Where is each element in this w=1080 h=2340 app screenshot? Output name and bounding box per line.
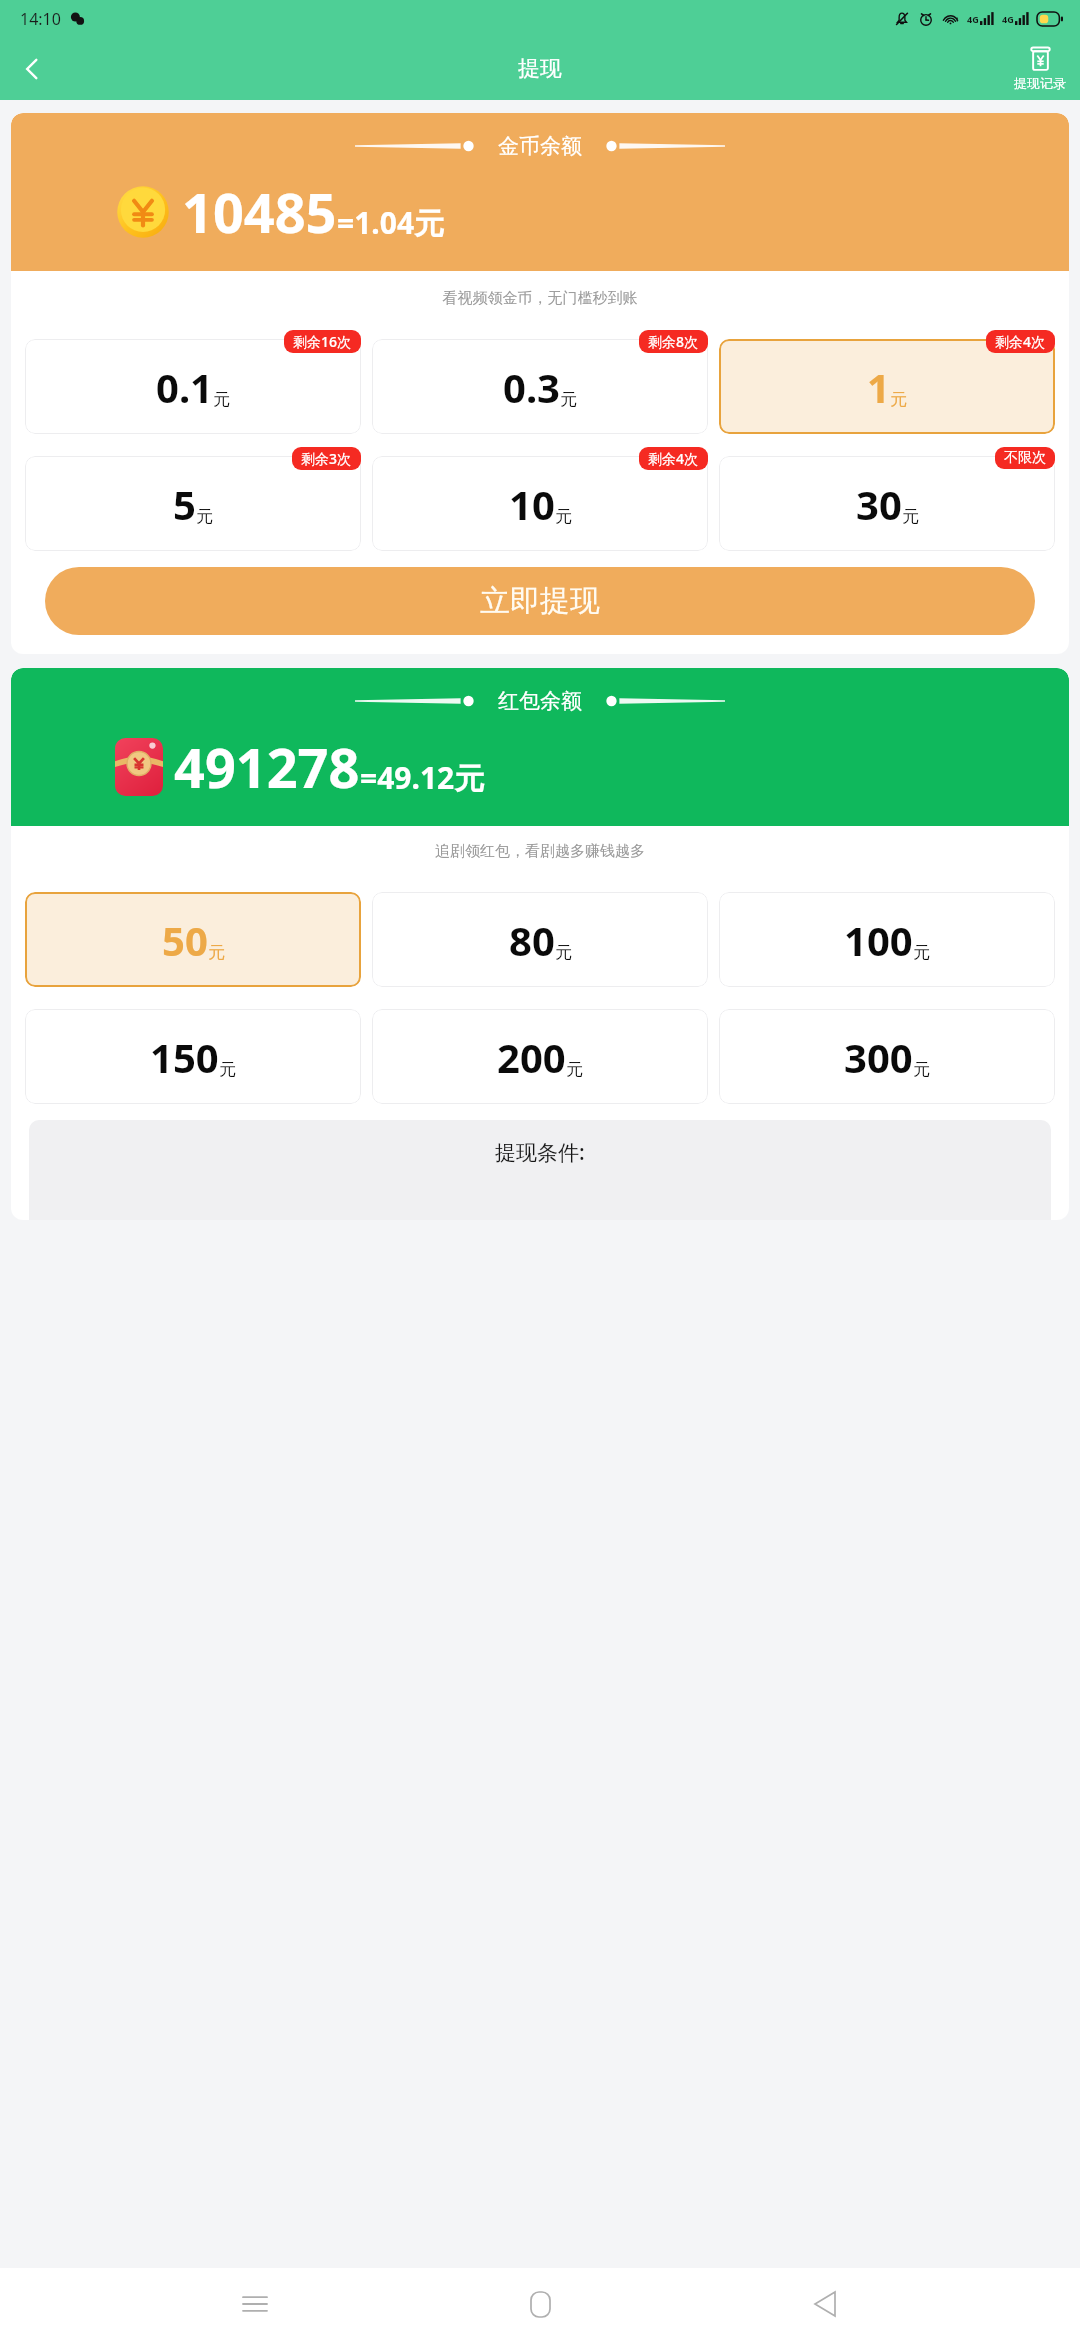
staticText: 元 [196, 506, 213, 527]
staticText: 0.3 [503, 360, 560, 414]
staticText: 元 [913, 1059, 930, 1080]
staticText: 4G [1002, 13, 1014, 25]
staticText: 元 [219, 1059, 236, 1080]
button[interactable]: 立即提现 [45, 567, 1035, 635]
button[interactable]: 300 [719, 1009, 1055, 1104]
staticText: 提现记录 [1014, 75, 1066, 91]
staticText: 看视频领金币，无门槛秒到账 [11, 289, 1069, 308]
staticText: 元 [913, 942, 930, 963]
staticText: 剩余8次 [648, 332, 699, 351]
staticText: 150 [150, 1030, 219, 1084]
staticText: 5 [173, 477, 196, 531]
button[interactable]: 30 [719, 456, 1055, 551]
button[interactable]: 200 [372, 1009, 708, 1104]
button[interactable]: 80 [372, 892, 708, 987]
staticText: 300 [844, 1030, 913, 1084]
staticText: 元 [555, 506, 572, 527]
staticText: 10485 [182, 175, 337, 249]
staticText: 元 [566, 1059, 583, 1080]
staticText: 30 [856, 477, 902, 531]
staticText: 不限次 [1004, 449, 1046, 467]
button[interactable]: 0.1 [25, 339, 361, 434]
staticText: 50 [162, 913, 208, 967]
staticText: =1.04元 [337, 202, 445, 243]
staticText: 1 [867, 360, 890, 414]
button[interactable]: 0.3 [372, 339, 708, 434]
staticText: 80 [509, 913, 555, 967]
staticText: 剩余4次 [995, 332, 1046, 351]
staticText: 491278 [174, 730, 360, 804]
staticText: 提现 [518, 55, 562, 83]
button[interactable]: Home [510, 2274, 570, 2334]
staticText: 14:10 [20, 8, 61, 30]
staticText: 元 [208, 942, 225, 963]
staticText: 剩余16次 [293, 332, 352, 351]
staticText: 元 [560, 389, 577, 410]
staticText: 剩余3次 [301, 449, 352, 468]
staticText: 剩余4次 [648, 449, 699, 468]
staticText: 0.1 [156, 360, 213, 414]
button[interactable]: 1 [719, 339, 1055, 434]
staticText: 4G [967, 13, 979, 25]
button[interactable]: 100 [719, 892, 1055, 987]
button[interactable]: 10 [372, 456, 708, 551]
staticText: 元 [555, 942, 572, 963]
button[interactable]: Recents [225, 2274, 285, 2334]
staticText: 红包余额 [498, 688, 582, 714]
staticText: 元 [213, 389, 230, 410]
button[interactable]: 150 [25, 1009, 361, 1104]
staticText: 金币余额 [498, 133, 582, 159]
staticText: 元 [902, 506, 919, 527]
staticText: 10 [509, 477, 555, 531]
button[interactable]: Back [795, 2274, 855, 2334]
staticText: 100 [844, 913, 913, 967]
staticText: 200 [497, 1030, 566, 1084]
button[interactable]: 提现记录 [1010, 45, 1070, 93]
staticText: 立即提现 [480, 582, 600, 620]
staticText: 提现条件: [495, 1138, 585, 1167]
button[interactable]: Back [8, 45, 56, 93]
staticText: =49.12元 [360, 757, 485, 798]
button[interactable]: 50 [25, 892, 361, 987]
staticText: 元 [890, 389, 907, 410]
staticText: 追剧领红包，看剧越多赚钱越多 [11, 842, 1069, 861]
button[interactable]: 5 [25, 456, 361, 551]
